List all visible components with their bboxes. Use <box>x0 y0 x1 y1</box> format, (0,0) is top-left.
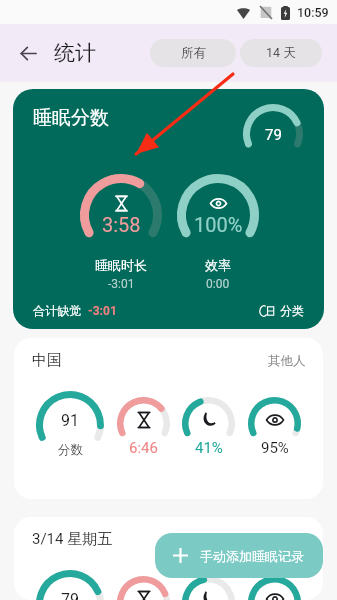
button[interactable]: 中国 <box>14 338 323 499</box>
staticText: -3:01 <box>108 277 135 291</box>
staticText: 统计 <box>54 40 96 66</box>
staticText: 手动添加睡眠记录 <box>200 548 304 564</box>
staticText: 91 <box>61 411 79 430</box>
staticText: 合计缺觉 <box>33 303 81 318</box>
button[interactable]: 分类 <box>260 303 304 318</box>
staticText: 中国 <box>32 351 62 370</box>
button[interactable]: 所有 <box>150 39 236 67</box>
staticText: 3:58 <box>102 213 141 236</box>
button[interactable]: 手动添加睡眠记录 <box>155 533 323 578</box>
staticText: 分类 <box>280 303 304 318</box>
staticText: 睡眠时长 <box>95 257 147 273</box>
staticText: 100% <box>194 213 243 236</box>
staticText: 所有 <box>181 45 206 61</box>
button[interactable]: 睡眠分数 <box>13 89 324 329</box>
staticText: 其他人 <box>268 353 306 369</box>
staticText: 睡眠分数 <box>33 106 109 130</box>
staticText: 41% <box>195 439 223 457</box>
button[interactable]: 14 天 <box>240 39 322 67</box>
staticText: 效率 <box>205 257 231 273</box>
staticText: 14 天 <box>266 45 296 61</box>
staticText: 79 <box>265 126 282 144</box>
staticText: 分数 <box>58 442 83 458</box>
staticText: 6:46 <box>129 439 158 457</box>
staticText: 0:00 <box>206 277 230 291</box>
staticText: 3/14 星期五 <box>32 530 113 549</box>
staticText: 95% <box>261 439 289 457</box>
staticText: 79 <box>61 590 79 600</box>
button[interactable]: Back <box>8 33 48 73</box>
button[interactable]: 3/14 星期五 <box>14 517 323 600</box>
staticText: -3:01 <box>88 304 117 318</box>
staticText: 10:59 <box>297 5 329 20</box>
